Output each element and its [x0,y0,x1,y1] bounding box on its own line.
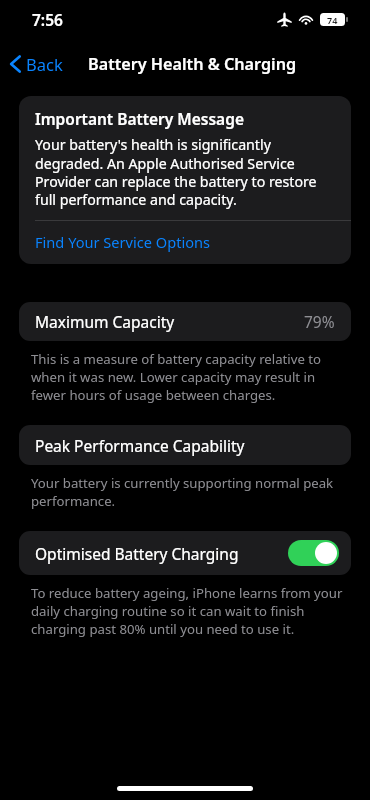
button[interactable]: Maximum Capacity [19,302,351,341]
button[interactable]: Back [0,49,73,79]
button[interactable]: Find Your Service Options [19,221,351,264]
staticText: Battery Health & Charging [88,53,297,75]
staticText: Back [26,53,63,75]
staticText: 74 [327,14,338,26]
staticText: 7:56 [32,9,63,30]
staticText: Optimised Battery Charging [35,543,239,564]
button[interactable]: Optimised Battery Charging [19,531,351,575]
button[interactable]: Optimised Battery Charging toggle, on [288,540,339,566]
staticText: Maximum Capacity [35,311,175,332]
staticText: This is a measure of battery capacity re… [31,350,344,404]
staticText: 79% [304,311,335,332]
staticText: Find Your Service Options [35,232,211,252]
button[interactable]: Peak Performance Capability [19,425,351,465]
staticText: Important Battery Message [35,108,244,129]
staticText: To reduce battery ageing, iPhone learns … [31,584,344,638]
staticText: Peak Performance Capability [35,435,245,456]
staticText: Your battery's health is significantly d… [35,135,337,209]
staticText: Your battery is currently supporting nor… [31,474,344,510]
